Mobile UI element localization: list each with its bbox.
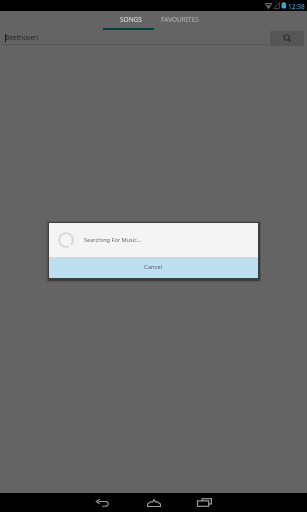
other: Battery <box>281 2 287 9</box>
button[interactable]: Search <box>270 31 304 46</box>
other: Wi-Fi <box>265 2 272 9</box>
button[interactable]: FAVOURITES <box>156 11 204 30</box>
staticText: SONGS <box>120 15 142 24</box>
button[interactable]: Home <box>140 493 168 512</box>
staticText: Searching For Music... <box>84 236 142 244</box>
button[interactable]: SONGS <box>103 11 154 30</box>
staticText: Beethoven <box>5 33 39 42</box>
button[interactable]: Recent apps <box>190 493 218 512</box>
button[interactable]: Back <box>88 493 116 512</box>
staticText: FAVOURITES <box>161 15 199 24</box>
button[interactable]: Cancel <box>49 257 258 278</box>
other: Signal <box>273 2 280 9</box>
staticText: 12:38 <box>288 2 305 11</box>
staticText: Cancel <box>144 263 163 271</box>
button[interactable]: Beethoven <box>3 31 268 45</box>
